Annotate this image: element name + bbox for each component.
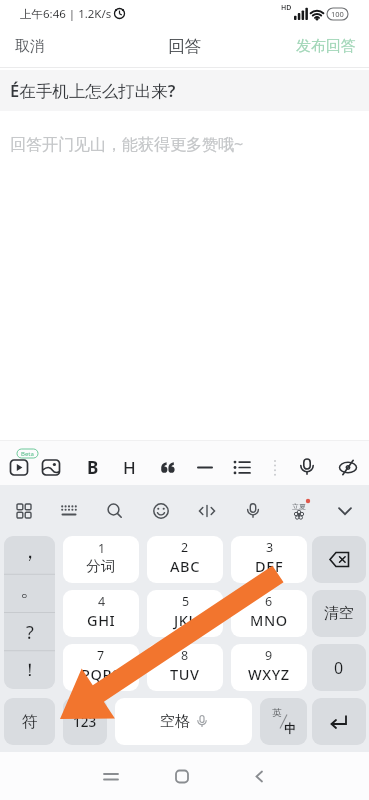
staticText: 9 <box>265 647 273 664</box>
staticText: GHI <box>87 610 116 630</box>
button[interactable]: 清空 <box>312 590 366 637</box>
staticText: 1 <box>98 540 106 557</box>
button[interactable] <box>330 450 366 485</box>
button[interactable] <box>187 492 227 530</box>
button[interactable] <box>141 492 181 530</box>
button[interactable]: B <box>75 450 111 485</box>
button[interactable]: 1 <box>63 536 139 583</box>
button[interactable] <box>91 762 131 792</box>
staticText: ? <box>26 620 34 645</box>
button[interactable] <box>239 762 279 792</box>
button[interactable]: 7 <box>63 644 139 691</box>
staticText: 6 <box>265 593 273 610</box>
staticText: 回答 <box>168 36 201 57</box>
staticText: JKL <box>174 610 197 630</box>
button[interactable] <box>33 450 69 485</box>
staticText: B <box>87 456 99 479</box>
staticText: DEF <box>255 556 284 576</box>
button[interactable]: 空格 <box>115 698 252 745</box>
staticText: 2 <box>181 539 189 556</box>
button[interactable] <box>224 450 260 485</box>
staticText: 取消 <box>15 37 45 56</box>
staticText: 0 <box>334 657 344 679</box>
button[interactable]: 符 <box>4 698 55 745</box>
staticText: 。 <box>20 577 40 602</box>
button[interactable]: 0 <box>312 644 366 691</box>
staticText: 分词 <box>86 557 117 575</box>
staticText: 清空 <box>324 604 354 623</box>
staticText: HD <box>281 3 292 12</box>
button[interactable]: 取消 <box>15 26 59 66</box>
staticText: ！ <box>21 659 39 682</box>
button[interactable] <box>150 450 186 485</box>
staticText: TUV <box>170 664 200 684</box>
button[interactable]: 5 <box>147 590 223 637</box>
button[interactable]: 发布回答 <box>295 26 356 66</box>
button[interactable] <box>187 450 223 485</box>
staticText: 3 <box>266 539 274 556</box>
button[interactable] <box>312 536 366 583</box>
button[interactable]: 3 <box>231 536 307 583</box>
staticText: 中 <box>284 721 296 736</box>
staticText: 符 <box>22 712 38 732</box>
button[interactable] <box>325 492 365 530</box>
button[interactable] <box>49 492 89 530</box>
button[interactable]: H <box>111 450 147 485</box>
button[interactable]: 2 <box>147 536 223 583</box>
button[interactable] <box>4 492 44 530</box>
staticText: 8 <box>181 647 189 664</box>
button[interactable] <box>289 450 325 485</box>
button[interactable]: 9 <box>231 644 307 691</box>
button[interactable] <box>233 492 273 530</box>
staticText: 发布回答 <box>296 37 356 56</box>
staticText: 英 <box>272 707 282 719</box>
staticText: 5 <box>182 593 190 610</box>
staticText: 空格 <box>160 712 190 731</box>
staticText: 100 <box>331 9 344 19</box>
staticText: 立夏 <box>292 502 306 511</box>
staticText: 回答开门见山，能获得更多赞哦~ <box>10 133 244 155</box>
staticText: WXYZ <box>248 664 290 684</box>
button[interactable] <box>1 450 37 485</box>
staticText: MNO <box>250 610 288 630</box>
button[interactable]: 英 <box>260 698 307 745</box>
staticText: ABC <box>170 556 200 576</box>
button[interactable]: 6 <box>231 590 307 637</box>
staticText: PQRS <box>81 664 121 684</box>
staticText: 上午6:46 | 1.2K/s <box>20 6 112 22</box>
staticText: 7 <box>97 647 105 664</box>
button[interactable] <box>95 492 135 530</box>
staticText: H <box>123 456 136 479</box>
staticText: Beta <box>21 450 34 458</box>
button[interactable]: 立夏 <box>279 492 319 530</box>
button[interactable]: ， <box>4 536 55 689</box>
staticText: 4 <box>98 593 106 610</box>
button[interactable] <box>162 762 202 792</box>
staticText: É在手机上怎么打出来? <box>10 79 176 102</box>
button[interactable]: 123 <box>63 698 107 745</box>
button[interactable]: 4 <box>63 590 139 637</box>
button[interactable] <box>312 698 366 745</box>
staticText: 123 <box>73 713 97 731</box>
staticText: ， <box>20 539 40 564</box>
button[interactable]: 8 <box>147 644 223 691</box>
